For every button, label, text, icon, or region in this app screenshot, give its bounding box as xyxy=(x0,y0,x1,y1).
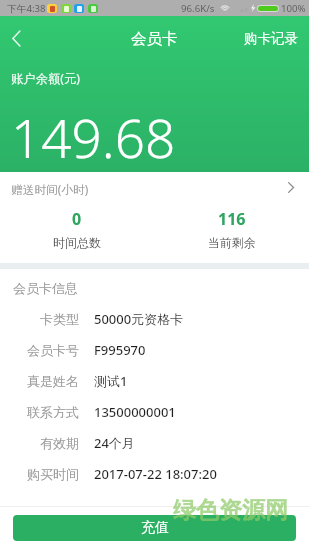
staticText: 2017-07-22 18:07:20 xyxy=(94,465,217,483)
staticText: 50000元资格卡 xyxy=(94,310,184,328)
staticText: 149.68 xyxy=(11,101,176,173)
staticText: 24个月 xyxy=(94,434,135,452)
staticText: 购买时间 xyxy=(27,466,79,482)
staticText: 100% xyxy=(281,2,306,15)
staticText: 下午4:38 xyxy=(7,2,46,15)
staticText: 有效期 xyxy=(40,435,79,451)
button[interactable]: 购卡记录 xyxy=(234,20,309,57)
staticText: 测试1 xyxy=(94,372,128,390)
staticText: 当前剩余 xyxy=(208,235,256,250)
staticText: 购卡记录 xyxy=(244,30,298,47)
staticText: 真是姓名 xyxy=(27,373,79,389)
staticText: 赠送时间(小时) xyxy=(11,181,89,197)
staticText: 会员卡 xyxy=(131,29,178,49)
staticText: 116 xyxy=(218,208,246,230)
staticText: 卡类型 xyxy=(40,311,79,327)
button[interactable]: 赠送时间(小时) xyxy=(0,172,309,201)
staticText: 13500000001 xyxy=(94,403,176,421)
staticText: 账户余额(元) xyxy=(11,70,80,87)
button[interactable]: Back xyxy=(0,21,33,55)
staticText: 96.6K/s xyxy=(181,2,215,15)
staticText: F995970 xyxy=(94,341,146,359)
staticText: 会员卡号 xyxy=(27,342,79,358)
staticText: 会员卡信息 xyxy=(13,280,78,296)
button[interactable]: 充值 xyxy=(13,515,296,541)
staticText: 时间总数 xyxy=(53,235,101,250)
staticText: 0 xyxy=(72,208,82,230)
staticText: 联系方式 xyxy=(27,404,79,420)
staticText: 充值 xyxy=(141,519,169,537)
staticText: 绿色资源网 xyxy=(173,496,288,525)
